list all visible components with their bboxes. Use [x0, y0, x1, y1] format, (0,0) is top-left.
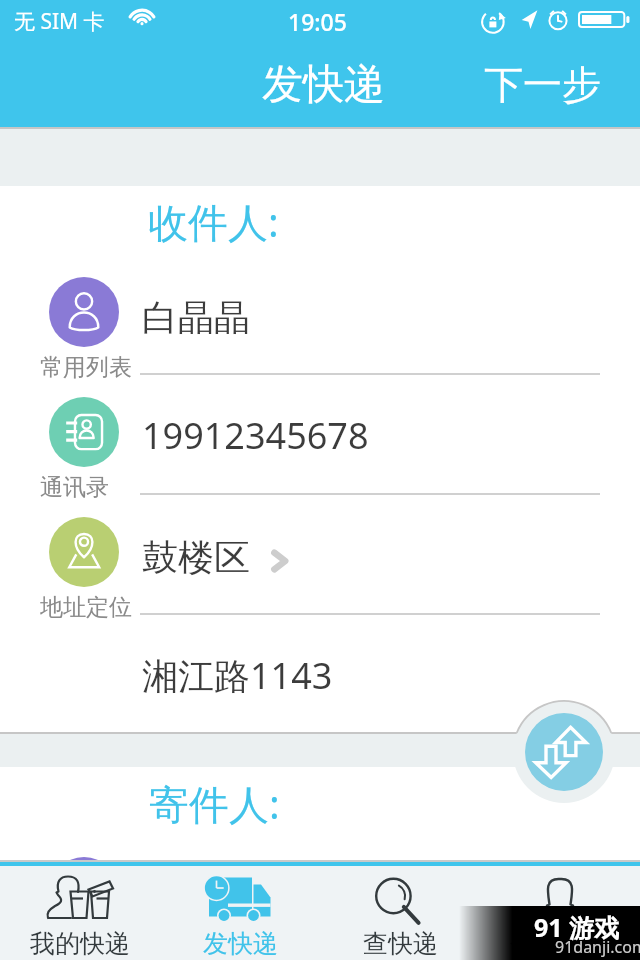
- staticText: 91danji.com: [555, 936, 640, 958]
- staticText: 91 游戏: [534, 910, 620, 944]
- button[interactable]: 鼓楼区: [0, 497, 640, 617]
- button[interactable]: 查快递: [320, 866, 480, 960]
- staticText: 无 SIM 卡: [14, 7, 105, 36]
- staticText: 地址定位: [40, 593, 132, 622]
- staticText: 湘江路1143: [142, 651, 333, 700]
- staticText: 常用列表: [40, 353, 132, 382]
- button[interactable]: 下一步: [466, 44, 625, 125]
- button[interactable]: 个人中心: [480, 866, 640, 960]
- staticText: 通讯录: [40, 473, 109, 502]
- staticText: 发快递: [262, 59, 385, 111]
- button[interactable]: 白晶晶: [0, 257, 640, 377]
- button[interactable]: 我的快递: [0, 866, 160, 960]
- staticText: 19:05: [288, 6, 347, 37]
- staticText: 查快递: [363, 928, 438, 959]
- button[interactable]: Swap sender and recipient: [513, 701, 615, 803]
- staticText: 我的快递: [30, 928, 130, 959]
- staticText: 寄件人:: [149, 776, 280, 831]
- staticText: 个人中心: [510, 928, 610, 959]
- staticText: 白晶晶: [142, 295, 250, 340]
- staticText: 下一步: [484, 60, 601, 109]
- button[interactable]: 发快递: [160, 866, 320, 960]
- staticText: 鼓楼区: [142, 535, 250, 580]
- button[interactable]: 19912345678: [0, 377, 640, 497]
- staticText: 19912345678: [142, 411, 369, 460]
- staticText: 收件人:: [148, 194, 279, 249]
- button[interactable]: 湘江路1143: [0, 637, 640, 707]
- staticText: 发快递: [203, 928, 278, 959]
